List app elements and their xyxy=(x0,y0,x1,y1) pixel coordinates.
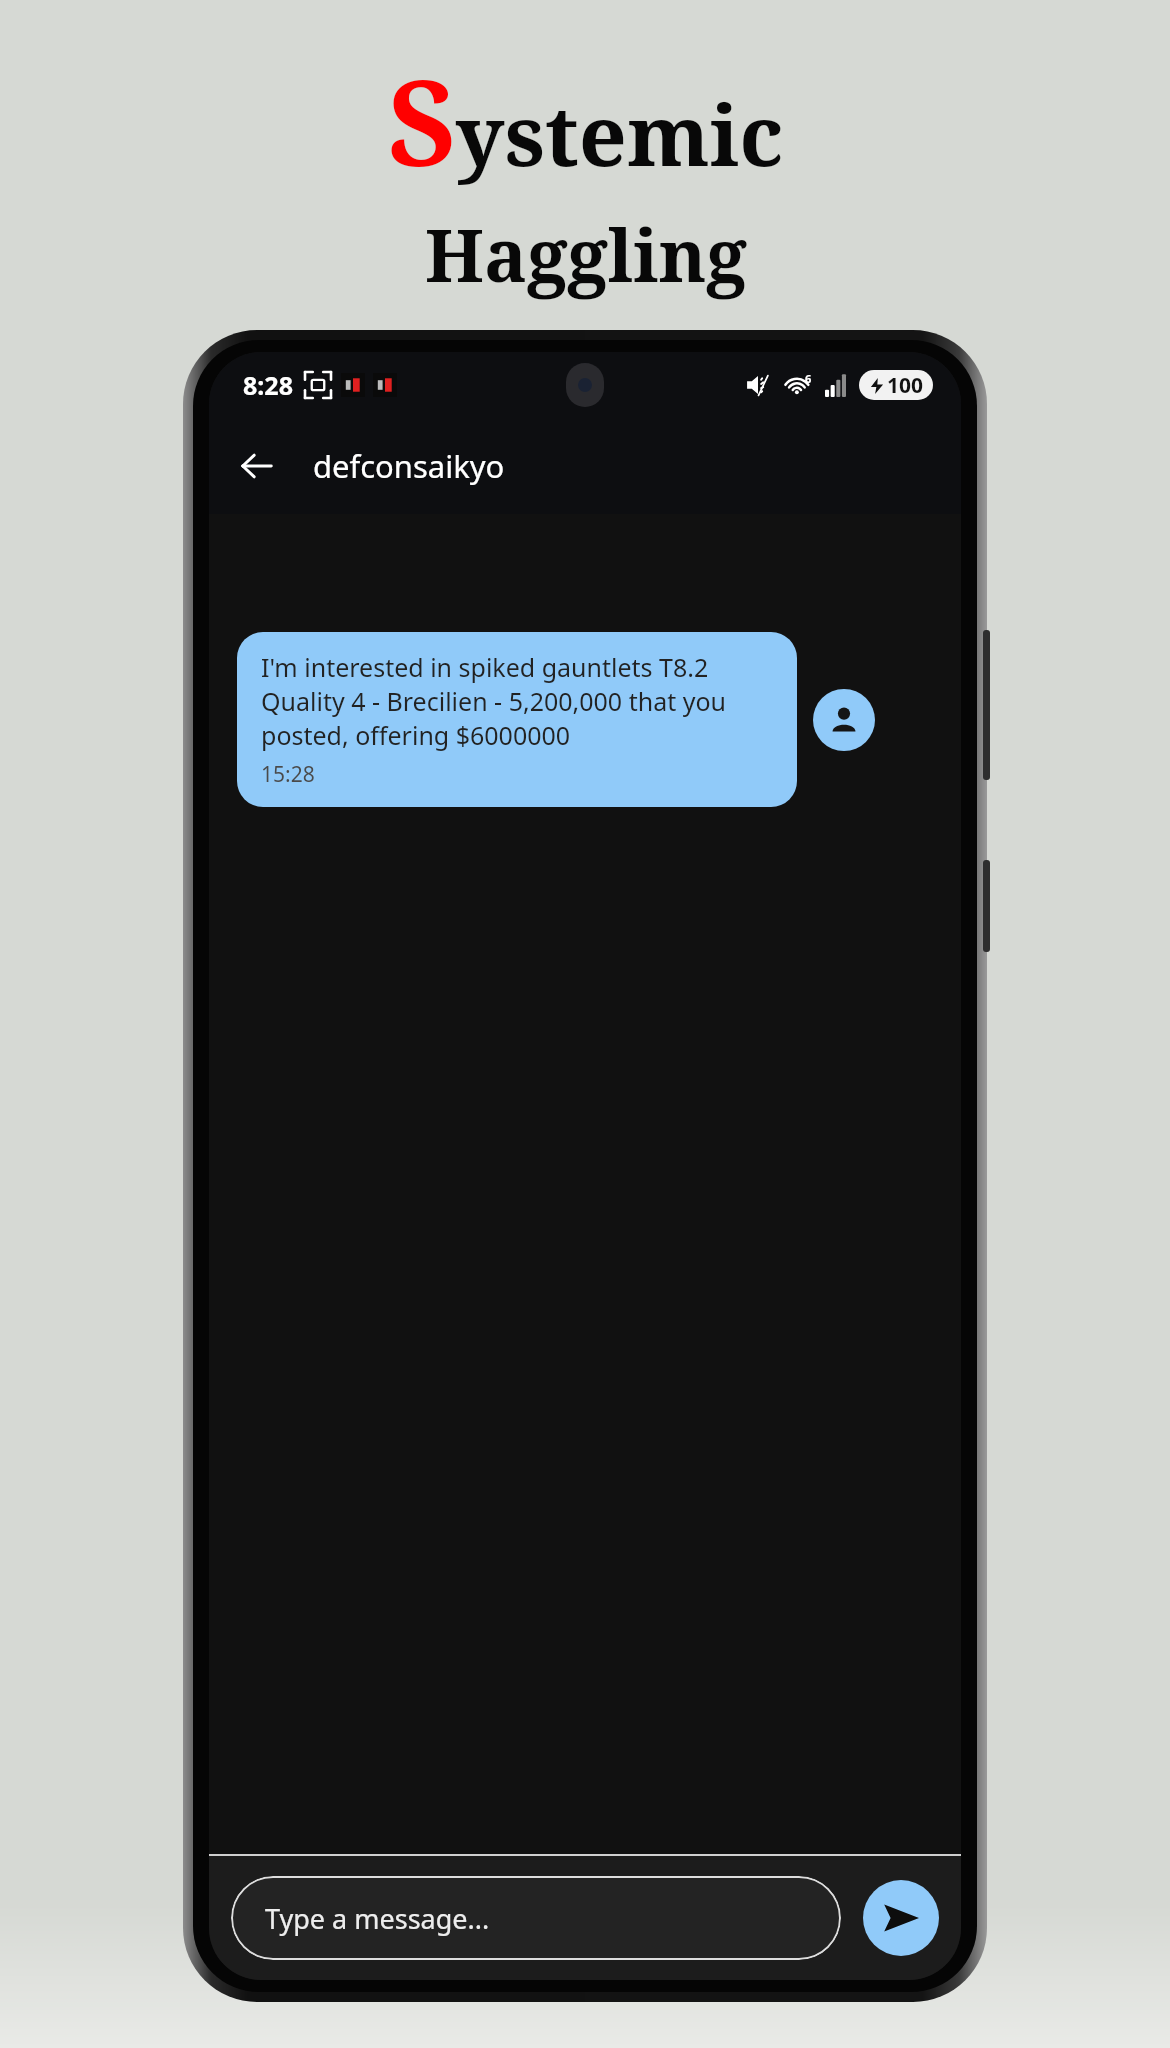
staticText: Type a message... xyxy=(265,1900,490,1937)
staticText: 100 xyxy=(887,371,924,400)
staticText: Systemic xyxy=(387,40,784,201)
button[interactable]: Send xyxy=(863,1880,939,1956)
button[interactable]: Type a message... xyxy=(231,1876,841,1960)
button[interactable]: I'm interested in spiked gauntlets T8.2 … xyxy=(237,632,797,807)
staticText: 8:28 xyxy=(243,368,293,402)
staticText: I'm interested in spiked gauntlets T8.2 … xyxy=(261,650,773,752)
button[interactable]: Back xyxy=(227,436,287,496)
staticText: Haggling xyxy=(425,205,747,303)
staticText: defconsaikyo xyxy=(313,445,505,487)
staticText: 15:28 xyxy=(261,760,315,789)
button[interactable]: Sender avatar xyxy=(813,689,875,751)
staticText: 6 xyxy=(805,371,812,386)
